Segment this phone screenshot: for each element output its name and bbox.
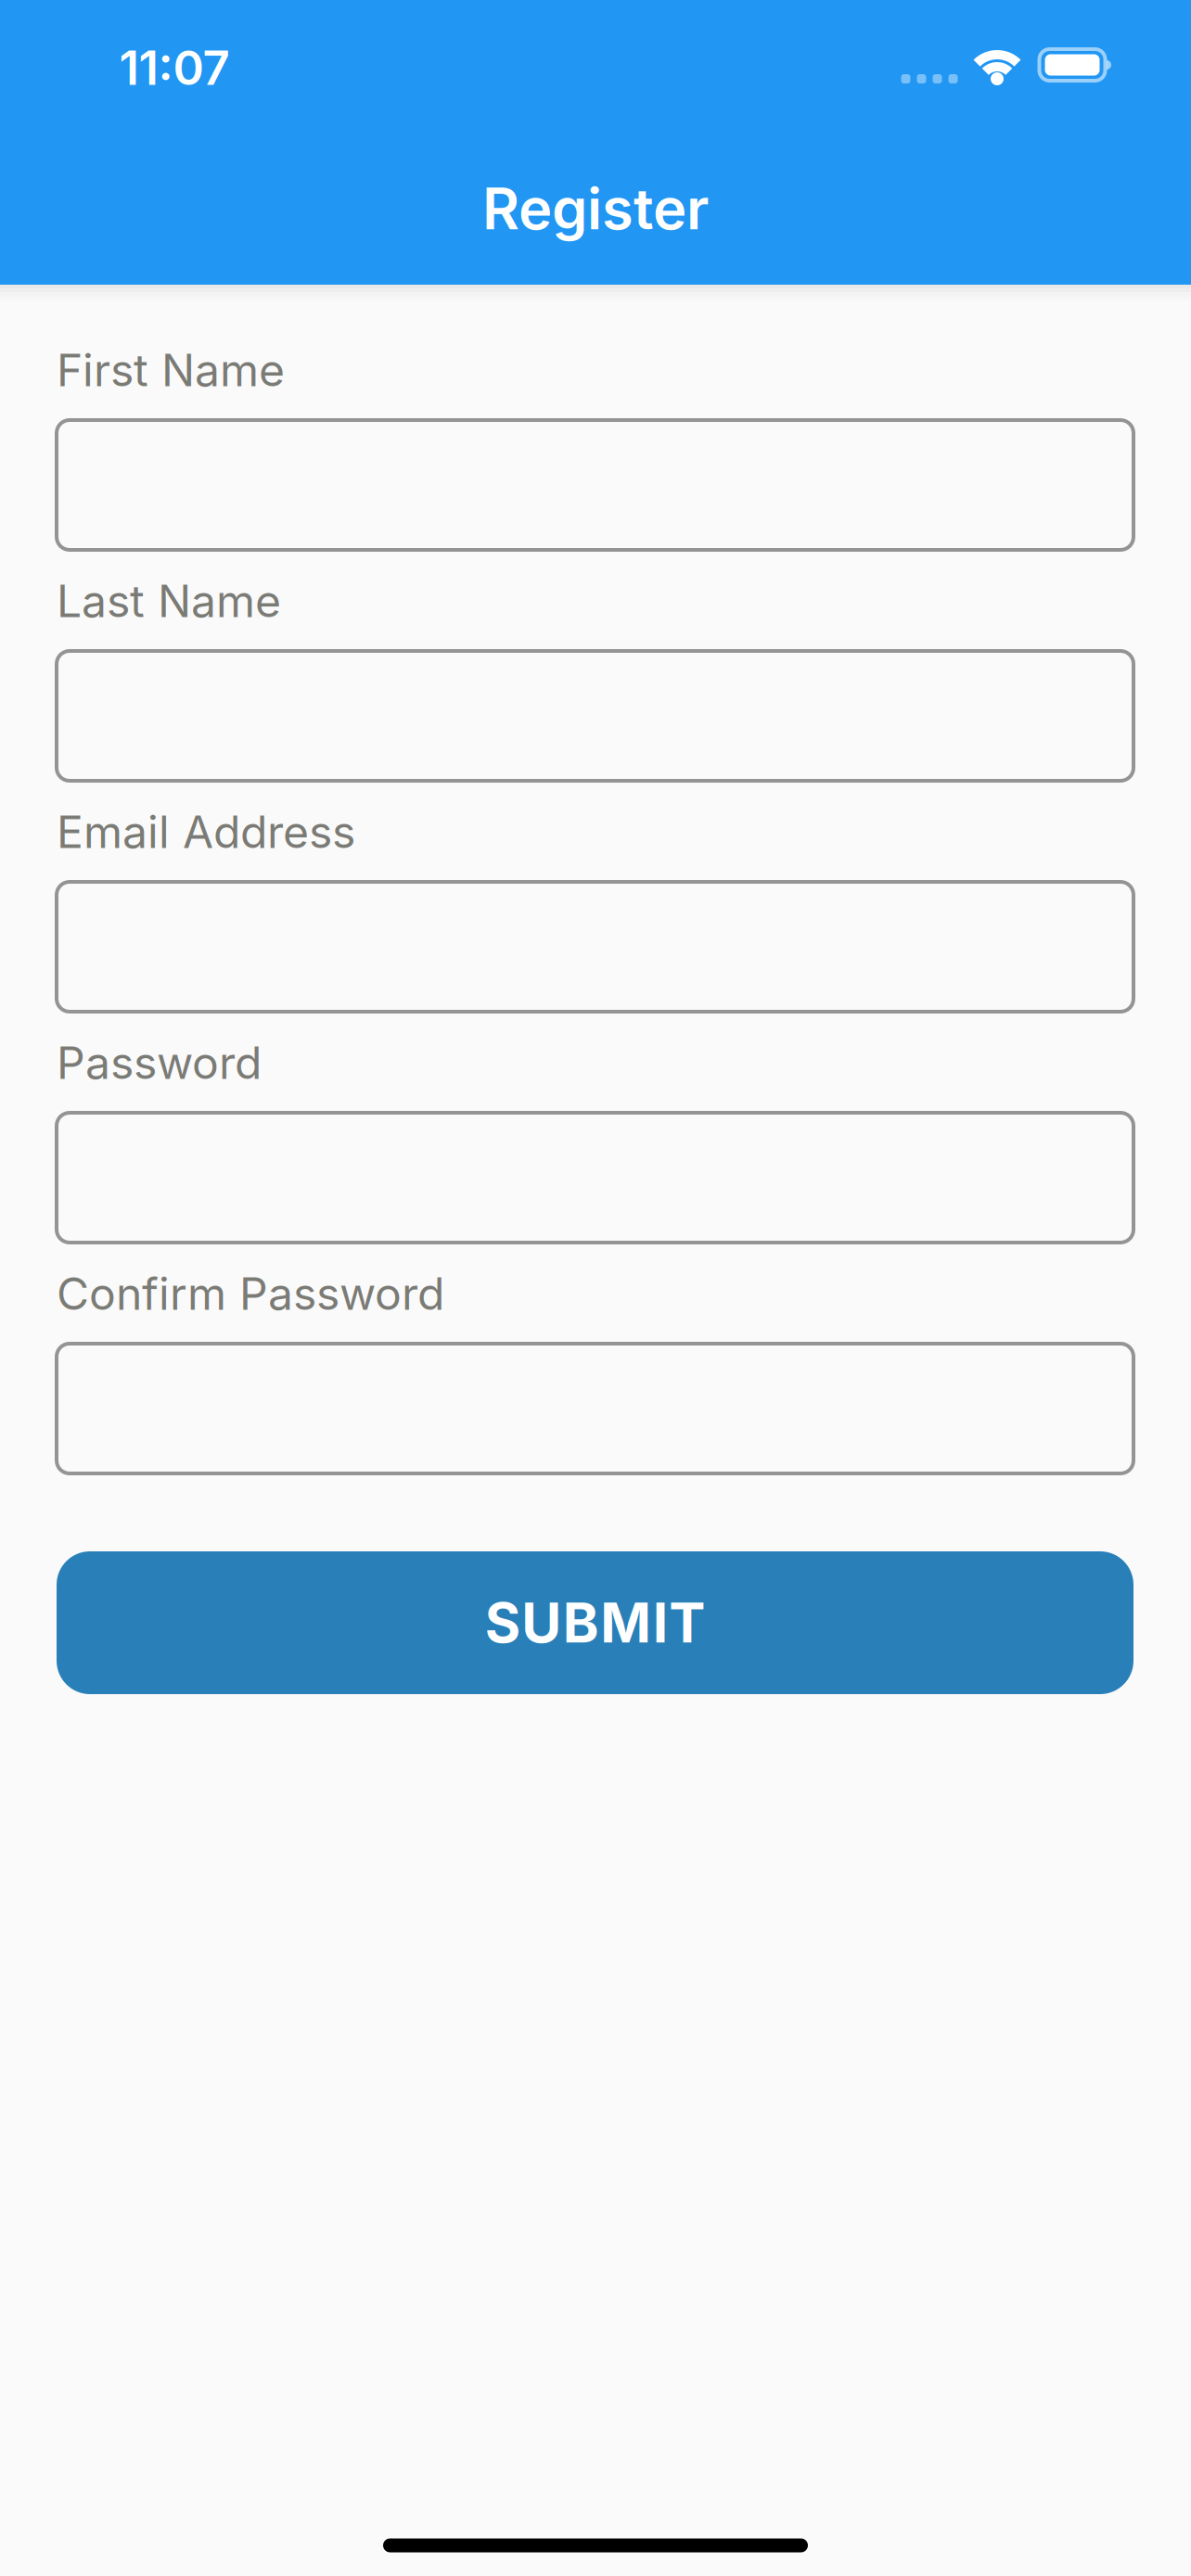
button[interactable] [57, 1113, 1133, 1243]
button[interactable] [57, 1344, 1133, 1473]
staticText: Register [482, 175, 709, 242]
button[interactable] [57, 420, 1133, 550]
button[interactable]: SUBMIT [57, 1551, 1133, 1694]
button[interactable] [57, 651, 1133, 781]
staticText: Email Address [57, 806, 355, 858]
staticText: First Name [57, 344, 285, 396]
staticText: Confirm Password [57, 1267, 444, 1320]
staticText: 11:07 [119, 40, 230, 95]
button[interactable] [57, 882, 1133, 1012]
staticText: Last Name [57, 575, 281, 627]
staticText: Password [57, 1036, 262, 1089]
staticText: SUBMIT [485, 1591, 705, 1655]
